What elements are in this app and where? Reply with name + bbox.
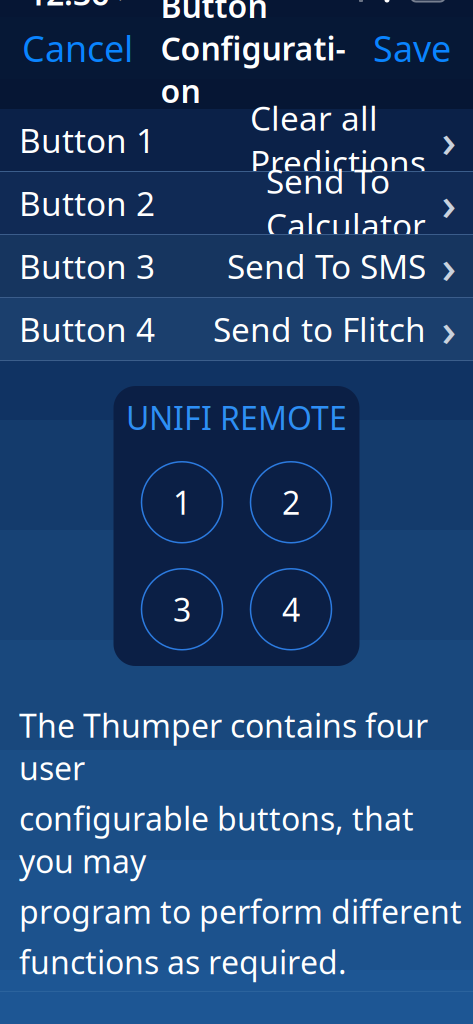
staticText: 3 bbox=[173, 588, 191, 630]
staticText: ➤ bbox=[117, 0, 136, 6]
button[interactable]: Remote button 1 bbox=[141, 462, 222, 543]
button[interactable]: Remote button 2 bbox=[250, 462, 331, 543]
staticText: › bbox=[441, 236, 456, 296]
button[interactable]: Button 3 bbox=[0, 235, 473, 297]
staticText: 4 bbox=[282, 588, 300, 630]
button[interactable]: Button 4 bbox=[0, 298, 473, 360]
staticText: Send to Flitch bbox=[213, 307, 426, 351]
staticText: functions as required. bbox=[19, 940, 347, 983]
staticText: UNIFI REMOTE bbox=[126, 396, 347, 439]
button[interactable]: Cancel bbox=[4, 10, 151, 86]
staticText: Cancel bbox=[22, 24, 133, 72]
staticText: Button 3 bbox=[19, 244, 155, 288]
staticText: Clear all Predictions bbox=[250, 96, 426, 184]
button[interactable]: Button 2 bbox=[0, 172, 473, 234]
staticText: 1 bbox=[173, 481, 191, 523]
staticText: configurable buttons, that you may bbox=[19, 797, 414, 882]
staticText: › bbox=[441, 299, 456, 359]
staticText: Button 4 bbox=[19, 307, 155, 351]
staticText: › bbox=[441, 173, 456, 233]
staticText: Button Configuration bbox=[160, 0, 345, 112]
button[interactable]: Remote button 4 bbox=[250, 569, 331, 650]
button[interactable]: Button 1 bbox=[0, 109, 473, 171]
staticText: The Thumper contains four user bbox=[19, 704, 428, 789]
staticText: Save bbox=[373, 24, 451, 72]
staticText: 2 bbox=[282, 481, 300, 523]
staticText: 12:36 bbox=[28, 0, 109, 14]
staticText: Button 1 bbox=[19, 118, 155, 162]
button[interactable]: Remote button 3 bbox=[141, 569, 222, 650]
staticText: Send To SMS bbox=[227, 244, 426, 288]
staticText: › bbox=[441, 110, 456, 170]
button[interactable]: Save bbox=[355, 10, 469, 86]
staticText: Button 2 bbox=[19, 181, 155, 225]
staticText: Send To Calculator bbox=[266, 159, 426, 247]
staticText: program to perform different bbox=[19, 890, 462, 932]
